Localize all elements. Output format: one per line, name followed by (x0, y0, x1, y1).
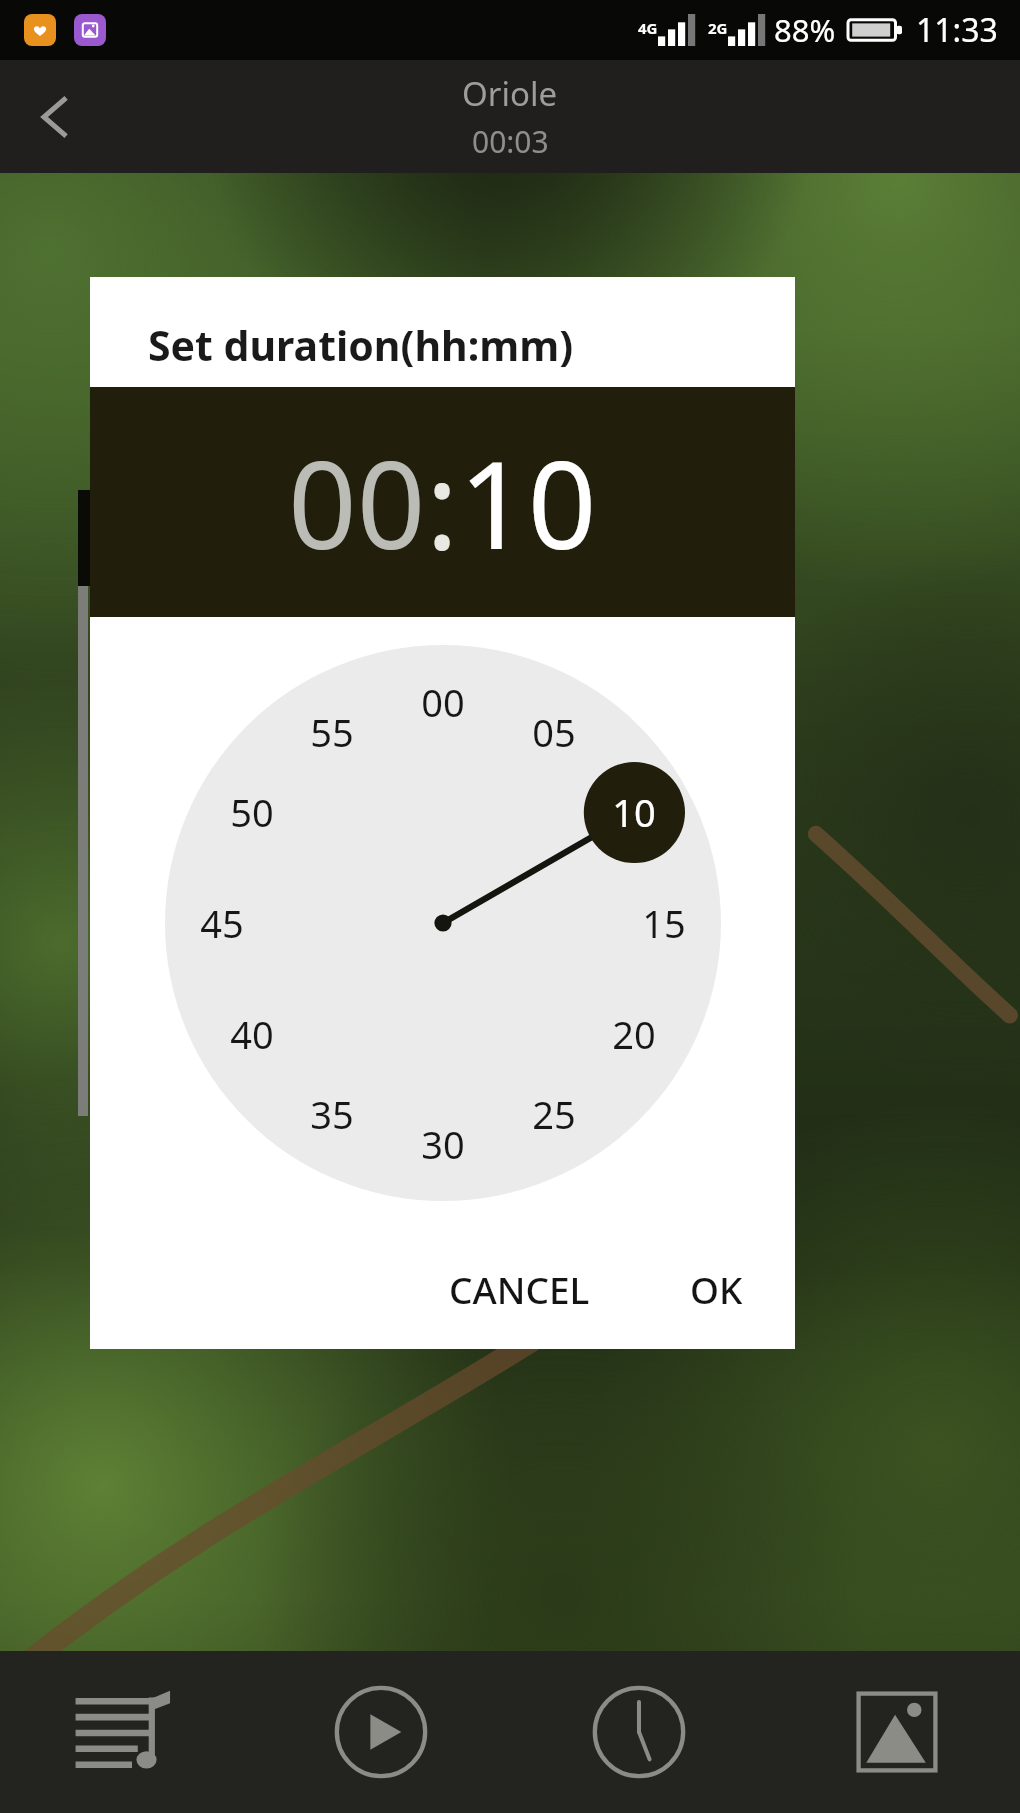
button[interactable]: Gallery (822, 1651, 972, 1813)
staticText: 50 (230, 786, 274, 838)
staticText: Set duration(hh:mm) (148, 317, 574, 373)
staticText: 4G (638, 18, 658, 38)
button[interactable]: Back (0, 62, 110, 172)
staticText: OK (690, 1264, 743, 1314)
staticText: Oriole (462, 71, 558, 116)
staticText: 11:33 (916, 8, 998, 52)
staticText: 55 (310, 706, 354, 758)
staticText: 45 (200, 897, 244, 949)
staticText: 00 (421, 676, 465, 728)
button[interactable]: 00 (288, 421, 426, 584)
button[interactable]: Timer (564, 1651, 714, 1813)
staticText: : (426, 421, 459, 584)
staticText: 15 (642, 897, 686, 949)
staticText: 20 (612, 1008, 656, 1060)
button[interactable]: 10 (459, 421, 597, 584)
staticText: 00:03 (472, 121, 549, 162)
button[interactable]: OK (666, 1246, 767, 1332)
staticText: 30 (421, 1118, 465, 1170)
staticText: CANCEL (449, 1264, 590, 1314)
staticText: 35 (310, 1088, 354, 1140)
staticText: 10 (612, 786, 656, 838)
staticText: 88% (774, 9, 836, 51)
staticText: 40 (230, 1008, 274, 1060)
staticText: 05 (532, 706, 576, 758)
staticText: 2G (708, 18, 728, 38)
button[interactable]: 00 (165, 645, 721, 1201)
button[interactable]: CANCEL (425, 1246, 614, 1332)
staticText: 25 (532, 1088, 576, 1140)
button[interactable]: Play (306, 1651, 456, 1813)
button[interactable]: Playlist (48, 1651, 198, 1813)
